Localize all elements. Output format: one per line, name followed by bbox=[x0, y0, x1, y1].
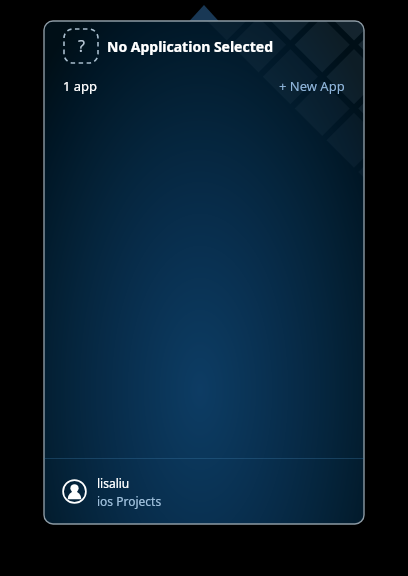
button[interactable]: + New App bbox=[279, 77, 345, 95]
staticText: lisaliu bbox=[97, 475, 130, 491]
other: Account bbox=[62, 479, 87, 504]
staticText: 1 app bbox=[63, 77, 98, 95]
staticText: No Application Selected bbox=[107, 37, 273, 56]
staticText: ? bbox=[78, 35, 85, 57]
staticText: ios Projects bbox=[97, 493, 162, 509]
